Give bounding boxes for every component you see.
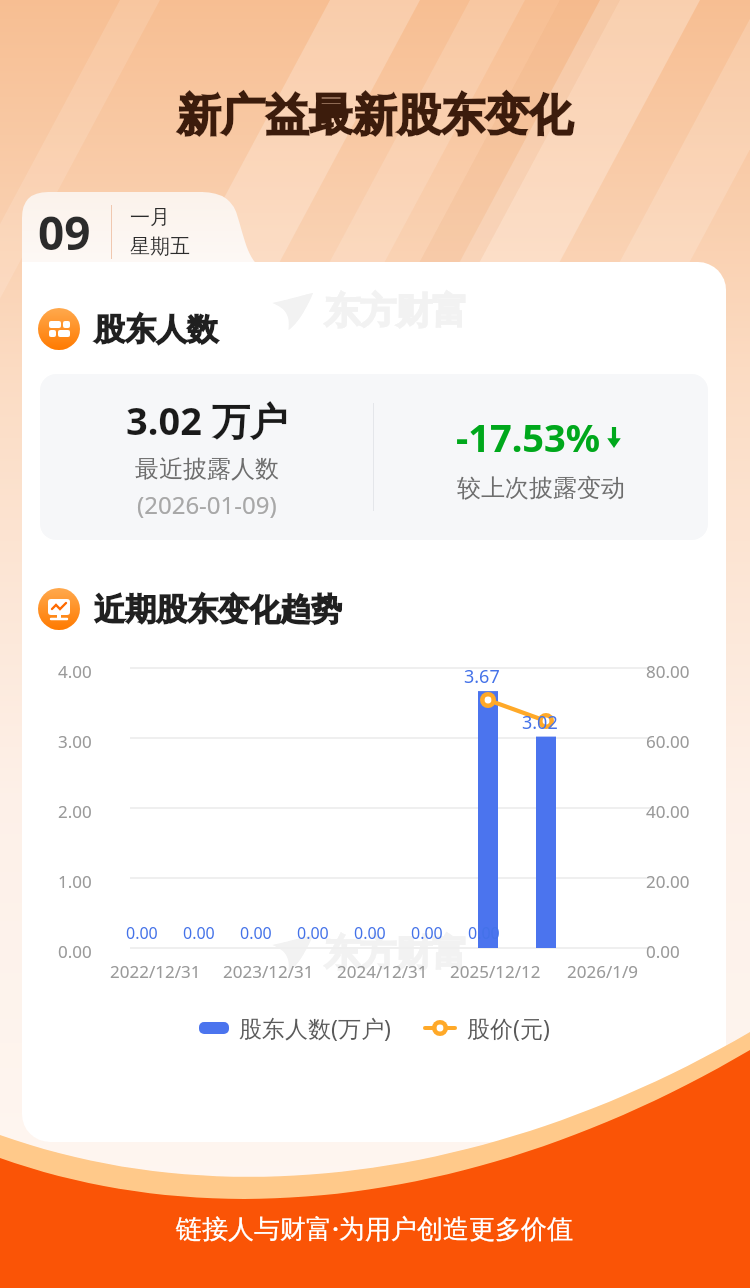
staticText: 40.00 — [646, 800, 690, 823]
staticText: 星期五 — [130, 234, 190, 259]
button[interactable]: 近期股东变化趋势 — [38, 588, 342, 630]
staticText: 0.00 — [646, 940, 680, 963]
staticText: 东方财富 — [324, 930, 468, 975]
staticText: 股东人数(万户) — [239, 1012, 391, 1043]
staticText: 3.00 — [58, 730, 92, 753]
other: 股东人数 — [38, 308, 80, 350]
staticText: 2.00 — [58, 800, 92, 823]
staticText: (2026-01-09) — [137, 488, 277, 521]
staticText: 近期股东变化趋势 — [94, 590, 342, 629]
staticText: 较上次披露变动 — [457, 473, 625, 503]
staticText: 3.67 — [464, 664, 500, 689]
staticText: 1.00 — [58, 870, 92, 893]
staticText: 20.00 — [646, 870, 690, 893]
staticText: 09 — [38, 201, 91, 264]
staticText: 新广益最新股东变化 — [177, 88, 573, 143]
staticText: 0.00 — [297, 922, 329, 944]
staticText: 3.02 — [522, 710, 558, 735]
staticText: 4.00 — [58, 660, 92, 683]
staticText: 0.00 — [411, 922, 443, 944]
button[interactable]: 股价(元) — [423, 1012, 550, 1043]
staticText: 0.00 — [58, 940, 92, 963]
staticText: 2025/12/12 — [450, 960, 541, 983]
button[interactable]: 股东人数(万户) — [199, 1012, 391, 1043]
staticText: 0.00 — [183, 922, 215, 944]
staticText: 链接人与财富·为用户创造更多价值 — [176, 1210, 574, 1246]
button[interactable]: 3.02 万户 — [40, 374, 708, 540]
staticText: 2026/1/9 — [567, 960, 638, 983]
staticText: -17.53% — [456, 411, 601, 463]
staticText: 2023/12/31 — [223, 960, 314, 983]
staticText: 最近披露人数 — [135, 454, 279, 484]
staticText: 2024/12/31 — [337, 960, 428, 983]
staticText: 2022/12/31 — [110, 960, 201, 983]
staticText: 0.00 — [468, 922, 500, 944]
staticText: 3.02 万户 — [126, 394, 288, 446]
other: 近期股东变化趋势 — [38, 588, 80, 630]
staticText: 一月 — [130, 205, 170, 230]
button[interactable]: 股东人数 — [38, 308, 218, 350]
staticText: 股价(元) — [467, 1012, 550, 1043]
staticText: 60.00 — [646, 730, 690, 753]
staticText: 东方财富 — [324, 288, 468, 333]
staticText: 股东人数 — [94, 310, 218, 349]
staticText: 0.00 — [240, 922, 272, 944]
staticText: 80.00 — [646, 660, 690, 683]
staticText: 0.00 — [126, 922, 158, 944]
staticText: 0.00 — [354, 922, 386, 944]
